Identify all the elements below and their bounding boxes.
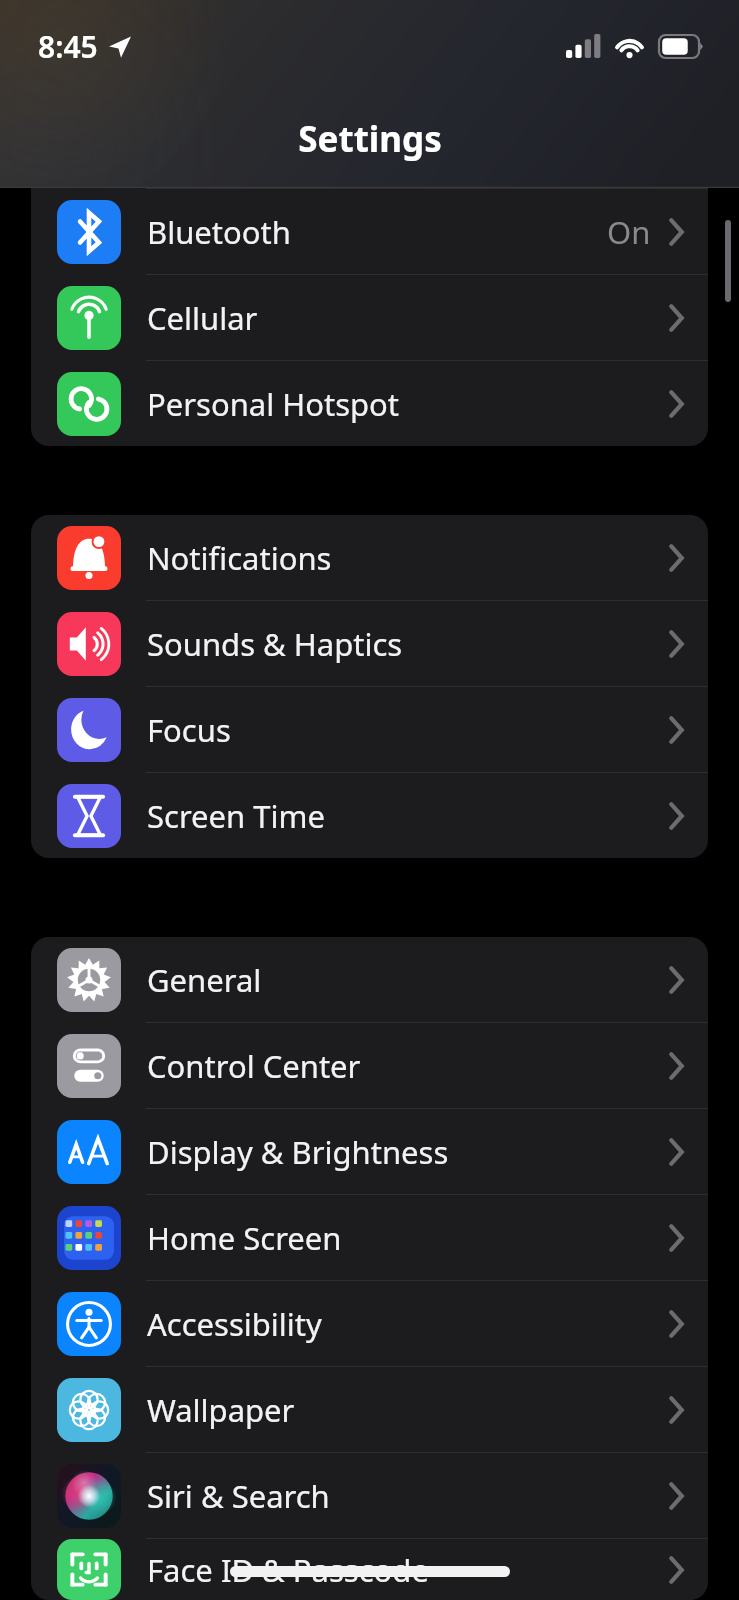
staticText: Control Center: [147, 1045, 361, 1087]
staticText: Settings: [298, 115, 442, 163]
button[interactable]: Notifications: [31, 515, 708, 600]
staticText: General: [147, 959, 262, 1001]
staticText: Notifications: [147, 537, 332, 579]
staticText: Wallpaper: [147, 1389, 295, 1431]
staticText: Focus: [147, 709, 231, 751]
button[interactable]: Display & Brightness: [31, 1109, 708, 1194]
button[interactable]: Focus: [31, 687, 708, 772]
button[interactable]: General: [31, 937, 708, 1022]
staticText: Face ID & Passcode: [147, 1549, 429, 1591]
staticText: Sounds & Haptics: [147, 623, 403, 665]
staticText: On: [607, 211, 651, 253]
button[interactable]: Wallpaper: [31, 1367, 708, 1452]
staticText: Screen Time: [147, 795, 325, 837]
staticText: Bluetooth: [147, 211, 291, 253]
button[interactable]: Screen Time: [31, 773, 708, 858]
button[interactable]: Bluetooth: [31, 189, 708, 274]
button[interactable]: Personal Hotspot: [31, 361, 708, 446]
staticText: Home Screen: [147, 1217, 342, 1259]
staticText: Display & Brightness: [147, 1131, 449, 1173]
button[interactable]: Home Screen: [31, 1195, 708, 1280]
button[interactable]: Cellular: [31, 275, 708, 360]
staticText: Cellular: [147, 297, 258, 339]
button[interactable]: Control Center: [31, 1023, 708, 1108]
button[interactable]: Face ID & Passcode: [31, 1539, 708, 1600]
staticText: Personal Hotspot: [147, 383, 400, 425]
button[interactable]: Sounds & Haptics: [31, 601, 708, 686]
button[interactable]: Siri & Search: [31, 1453, 708, 1538]
staticText: Siri & Search: [147, 1475, 330, 1517]
button[interactable]: Accessibility: [31, 1281, 708, 1366]
staticText: 8:45: [38, 26, 98, 67]
staticText: Accessibility: [147, 1303, 322, 1345]
